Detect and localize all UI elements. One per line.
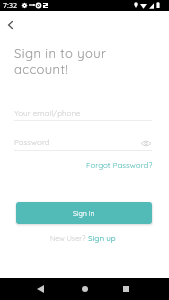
button[interactable]: Recent apps xyxy=(115,278,136,299)
button[interactable]: Home xyxy=(74,278,95,299)
staticText: 7:32 xyxy=(3,1,17,11)
staticText: Forgot Password? xyxy=(86,160,153,170)
staticText: Sign in to your account! xyxy=(14,45,107,77)
staticText: Sign In xyxy=(73,209,95,218)
staticText: Your email/phone xyxy=(14,108,81,118)
button[interactable]: Back xyxy=(30,278,51,299)
button[interactable]: Forgot Password? xyxy=(86,160,153,170)
button[interactable]: Sign up xyxy=(88,233,116,243)
button[interactable]: Show password xyxy=(139,137,152,150)
staticText: Password xyxy=(14,137,50,147)
button[interactable]: Back xyxy=(0,14,21,36)
button[interactable]: Sign In xyxy=(16,202,152,224)
staticText: New User? xyxy=(50,234,86,243)
